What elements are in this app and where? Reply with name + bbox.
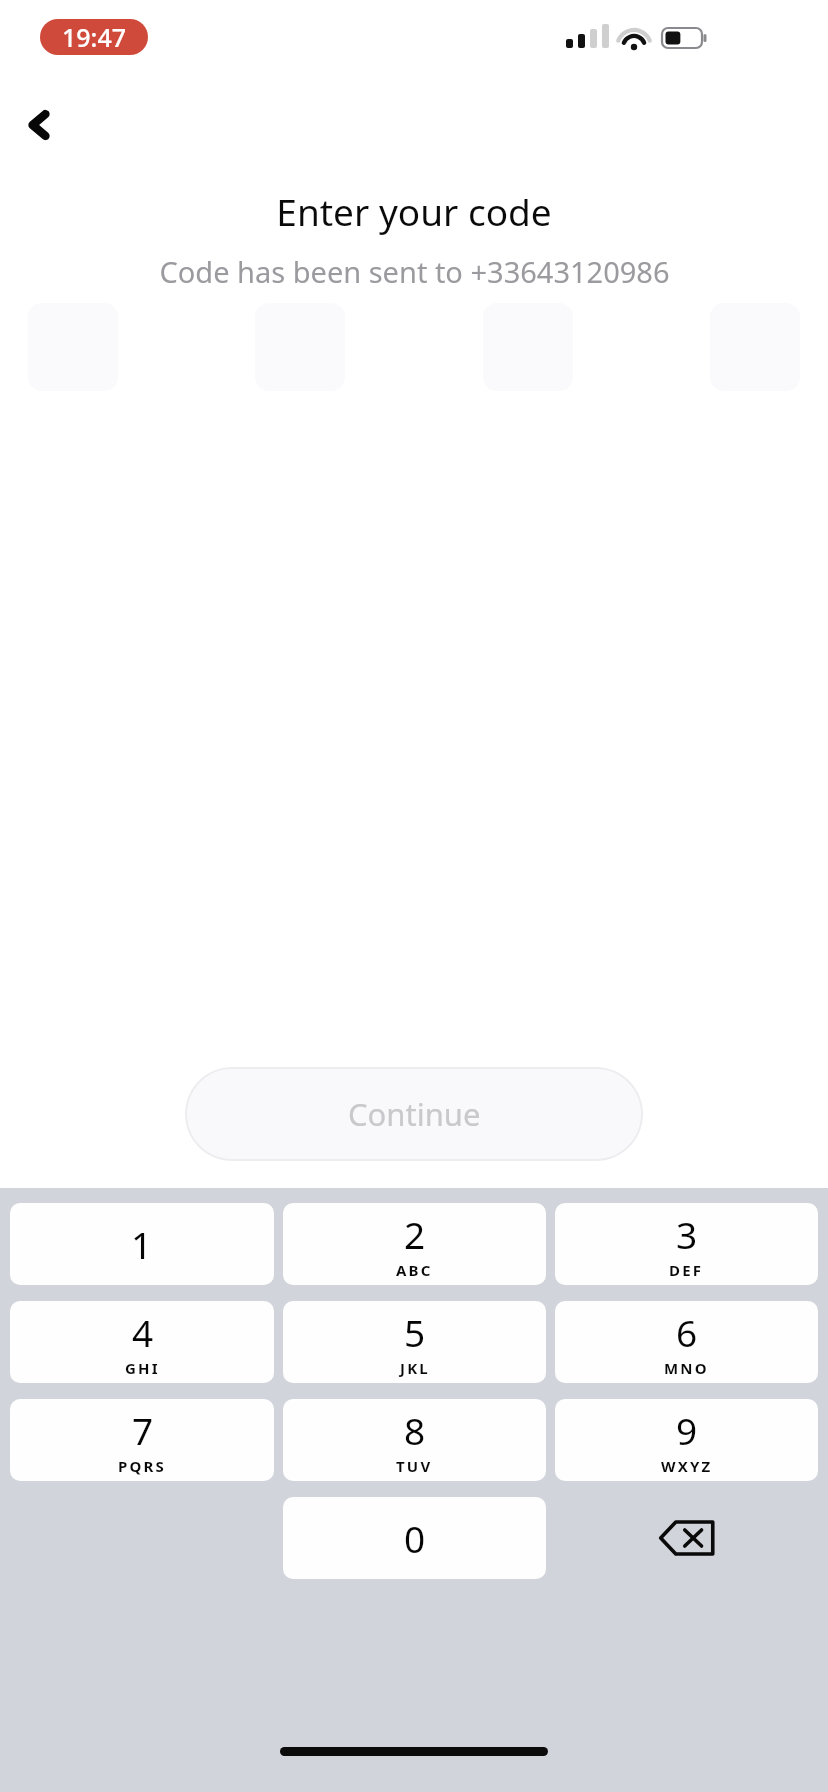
staticText: 19:47	[62, 20, 127, 54]
staticText: TUV	[396, 1456, 433, 1476]
staticText: Code has been sent to +33643120986	[159, 252, 670, 291]
button[interactable]: Backspace	[555, 1497, 818, 1579]
button[interactable]: 2	[283, 1203, 546, 1285]
staticText: 9	[676, 1405, 698, 1455]
staticText: 8	[404, 1405, 426, 1455]
button[interactable]: Back	[8, 94, 70, 156]
staticText: 4	[132, 1307, 154, 1357]
button[interactable]: 6	[555, 1301, 818, 1383]
staticText: WXYZ	[661, 1456, 713, 1476]
button[interactable]: 5	[283, 1301, 546, 1383]
staticText: 5	[404, 1307, 426, 1357]
button[interactable]: 9	[555, 1399, 818, 1481]
button[interactable]: 0	[283, 1497, 546, 1579]
staticText: PQRS	[118, 1456, 167, 1476]
button[interactable]: 4	[10, 1301, 274, 1383]
staticText: 7	[132, 1405, 154, 1455]
staticText: GHI	[125, 1358, 160, 1378]
staticText: 3	[676, 1209, 698, 1259]
staticText: Continue	[348, 1093, 481, 1135]
staticText: JKL	[400, 1358, 430, 1378]
staticText: DEF	[669, 1260, 704, 1280]
button[interactable]: 1	[10, 1203, 274, 1285]
button[interactable]: 8	[283, 1399, 546, 1481]
button[interactable]: 3	[555, 1203, 818, 1285]
staticText: ABC	[396, 1260, 433, 1280]
staticText: Enter your code	[276, 186, 552, 236]
staticText: 0	[404, 1513, 426, 1563]
staticText: MNO	[664, 1358, 709, 1378]
button[interactable]: 7	[10, 1399, 274, 1481]
button[interactable]: Continue	[185, 1067, 643, 1161]
staticText: 2	[404, 1209, 426, 1259]
staticText: 6	[676, 1307, 698, 1357]
staticText: 1	[131, 1219, 153, 1269]
